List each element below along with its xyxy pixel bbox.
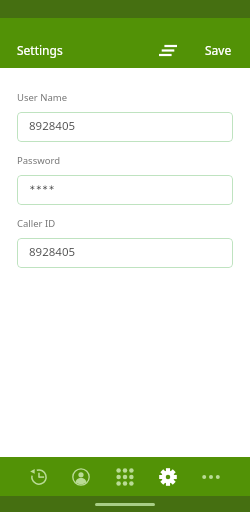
button[interactable]: ∗∗∗∗ [17,175,233,205]
button[interactable]: Account [62,458,100,496]
button[interactable]: More [192,458,230,496]
button[interactable]: Sort [155,37,181,63]
staticText: Settings [17,42,63,58]
button[interactable]: Dialpad [106,458,144,496]
staticText: User Name [17,91,68,104]
button[interactable]: Save [187,36,250,64]
button[interactable]: Settings [149,458,187,496]
staticText: ∗∗∗∗ [29,183,55,192]
button[interactable]: 8928405 [17,238,233,268]
staticText: Password [17,154,60,167]
staticText: 8928405 [29,244,76,260]
button[interactable]: 8928405 [17,112,233,142]
staticText: Caller ID [17,217,56,230]
button[interactable]: History [19,458,57,496]
staticText: 8928405 [29,118,76,134]
staticText: Save [205,42,232,58]
